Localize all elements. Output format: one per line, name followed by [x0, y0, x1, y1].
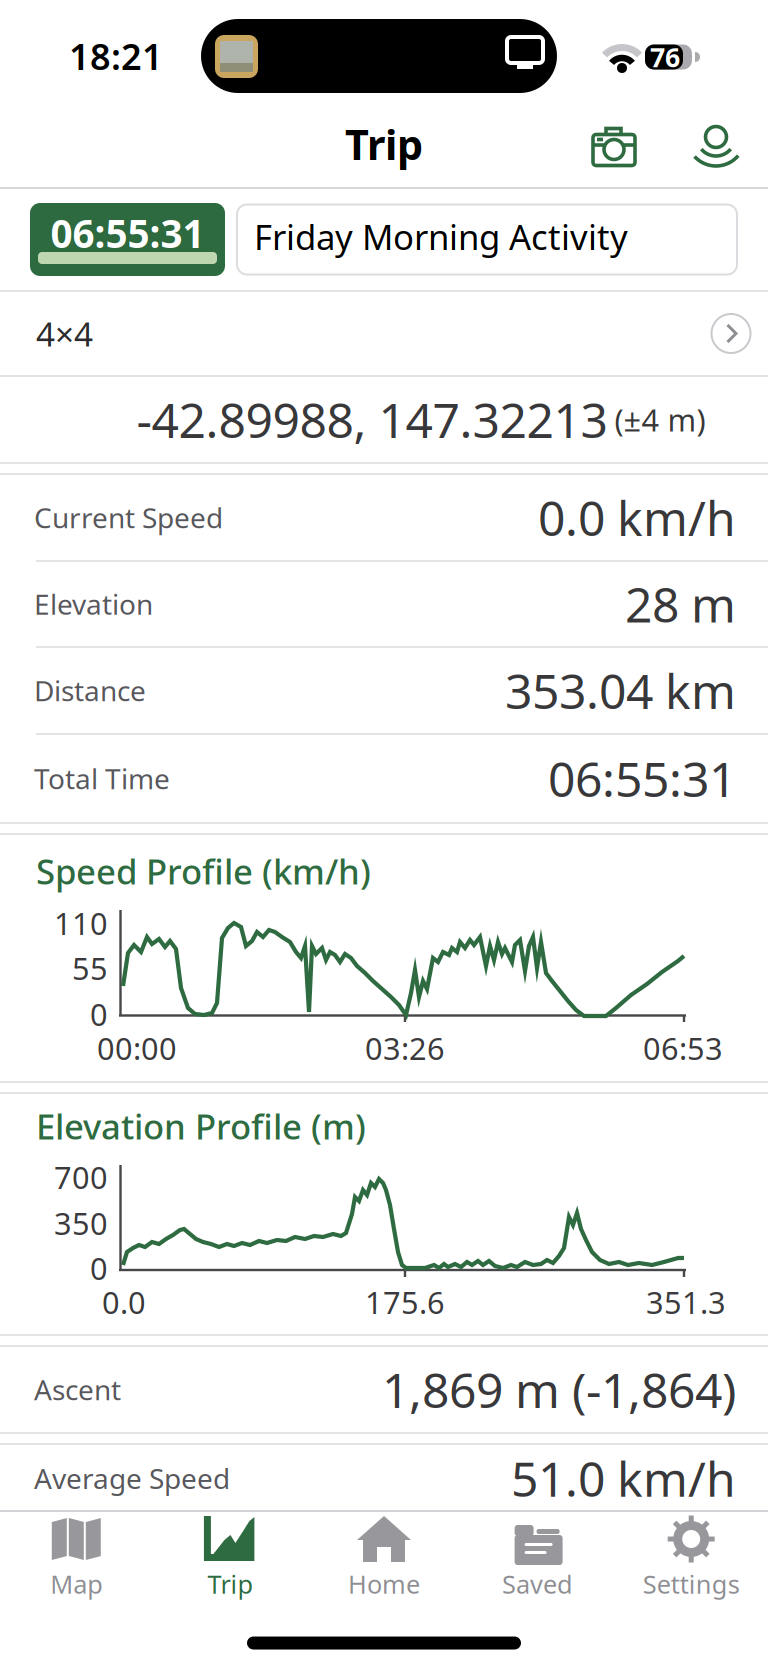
button[interactable]: Settings [614, 1516, 768, 1601]
staticText: Current Speed [34, 499, 223, 536]
staticText: 0.0 km/h [538, 486, 736, 549]
staticText: 1,869 m (-1,864) [382, 1358, 736, 1421]
button[interactable]: Locate [690, 125, 742, 169]
staticText: 18:21 [69, 32, 163, 80]
staticText: 06:55:31 [548, 747, 736, 810]
staticText: Trip [345, 117, 423, 171]
staticText: 55 [72, 948, 108, 988]
staticText: 175.6 [365, 1282, 445, 1322]
button[interactable]: Trip [154, 1516, 307, 1601]
staticText: 28 m [625, 572, 736, 636]
staticText: Settings [643, 1567, 740, 1601]
staticText: 03:26 [365, 1028, 445, 1068]
staticText: Trip [207, 1567, 253, 1601]
staticText: 06:53 [643, 1028, 723, 1068]
staticText: Map [50, 1567, 103, 1601]
button[interactable]: Saved [461, 1516, 614, 1601]
staticText: Home [348, 1567, 420, 1601]
staticText: Distance [34, 672, 146, 709]
button[interactable]: Map [0, 1516, 154, 1601]
staticText: 351.3 [646, 1282, 726, 1322]
staticText: 51.0 km/h [511, 1446, 736, 1510]
staticText: (±4 m) [614, 399, 705, 440]
staticText: Total Time [34, 760, 170, 797]
staticText: -42.89988, 147.32213 [136, 388, 607, 451]
staticText: 353.04 km [505, 659, 736, 722]
staticText: 350 [54, 1203, 108, 1243]
button[interactable]: Vehicle profile 4×4 [0, 311, 768, 356]
staticText: 76 [650, 39, 680, 75]
staticText: Elevation [34, 585, 153, 623]
staticText: 4×4 [36, 311, 93, 356]
staticText: 0 [90, 1248, 108, 1288]
staticText: 0.0 [102, 1282, 146, 1322]
staticText: Saved [502, 1567, 573, 1601]
button[interactable]: Activity name [237, 204, 737, 274]
button[interactable]: Home [307, 1516, 461, 1601]
staticText: 700 [54, 1157, 108, 1197]
button[interactable]: Take photo [592, 126, 636, 167]
staticText: Average Speed [34, 1459, 230, 1497]
staticText: 110 [54, 903, 108, 943]
staticText: Elevation Profile (m) [36, 1103, 366, 1149]
staticText: Speed Profile (km/h) [36, 848, 371, 894]
staticText: 00:00 [97, 1028, 177, 1068]
staticText: Ascent [34, 1371, 121, 1408]
staticText: 0 [90, 994, 108, 1034]
button[interactable]: Trip timer [30, 203, 225, 276]
staticText: 06:55:31 [50, 207, 204, 259]
staticText: Friday Morning Activity [254, 213, 628, 259]
